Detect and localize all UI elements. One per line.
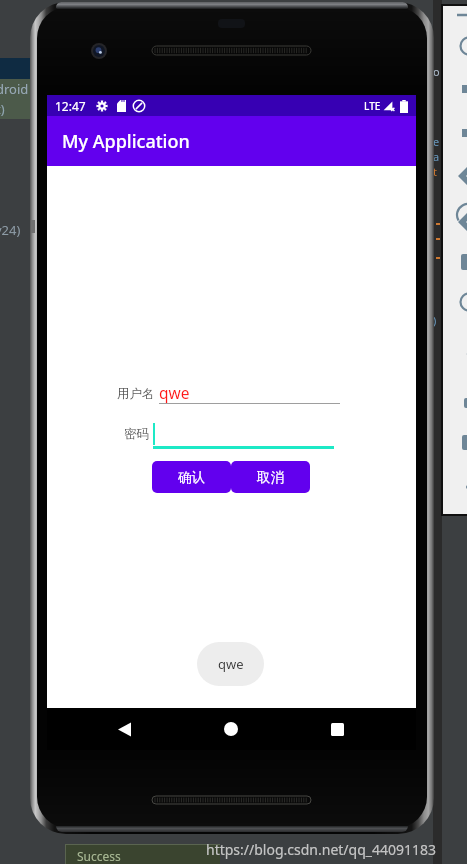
staticText: My Application xyxy=(62,129,190,154)
staticText: https://blog.csdn.net/qq_44091183 xyxy=(206,840,437,859)
staticText: 12:47 xyxy=(55,98,86,114)
staticText: 确认 xyxy=(178,469,205,486)
staticText: 取消 xyxy=(257,469,284,486)
button[interactable]: Recents xyxy=(307,708,367,750)
staticText: a xyxy=(433,149,440,164)
button[interactable]: 取消 xyxy=(231,461,310,493)
staticText: LTE xyxy=(364,99,381,113)
staticText: Success xyxy=(77,848,121,864)
staticText: droid xyxy=(0,80,29,98)
staticText: t xyxy=(433,164,437,179)
staticText: qwe xyxy=(159,382,190,403)
staticText: 密码 xyxy=(124,426,149,442)
staticText: 用户名 xyxy=(117,386,155,402)
button[interactable]: Home xyxy=(201,708,261,750)
button[interactable]: 确认 xyxy=(152,461,231,493)
staticText: t) xyxy=(0,100,5,118)
staticText: v24) xyxy=(0,221,21,239)
staticText: qwe xyxy=(218,655,244,673)
button[interactable]: Back xyxy=(94,708,154,750)
staticText: o xyxy=(433,64,440,79)
staticText: e xyxy=(433,134,440,149)
staticText: ) xyxy=(433,313,437,328)
button[interactable]: qwe xyxy=(197,642,264,686)
